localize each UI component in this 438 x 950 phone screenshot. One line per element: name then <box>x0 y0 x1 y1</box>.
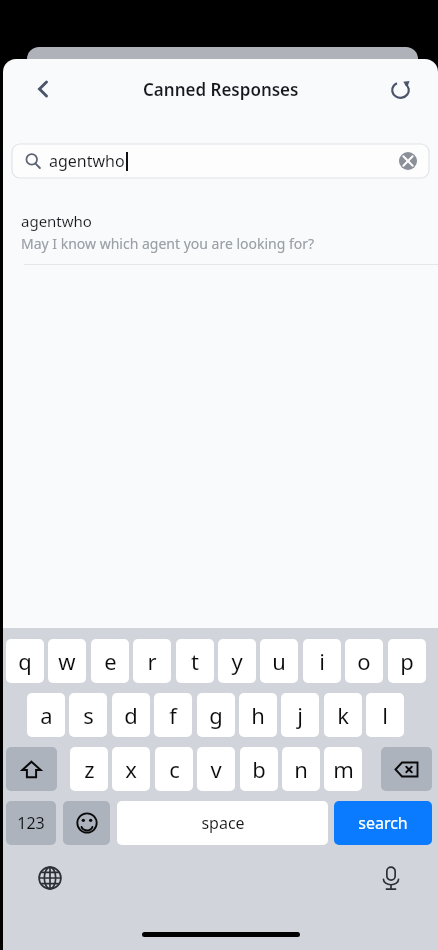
staticText: r <box>147 646 157 676</box>
staticText: b <box>252 754 266 784</box>
staticText: g <box>209 700 223 730</box>
staticText: agentwho <box>49 150 125 172</box>
button[interactable]: 123 <box>6 801 56 845</box>
staticText: q <box>18 646 32 676</box>
button[interactable]: Refresh <box>378 67 422 111</box>
button[interactable]: f <box>154 693 192 737</box>
staticText: Canned Responses <box>143 78 299 101</box>
button[interactable]: b <box>240 747 278 791</box>
button[interactable]: j <box>281 693 319 737</box>
staticText: a <box>40 700 53 730</box>
button[interactable]: h <box>239 693 277 737</box>
button[interactable]: v <box>197 747 235 791</box>
button[interactable]: Clear text <box>395 148 421 174</box>
button[interactable]: x <box>112 747 150 791</box>
staticText: search <box>358 812 408 834</box>
staticText: May I know which agent you are looking f… <box>21 234 315 253</box>
button[interactable]: space <box>117 801 328 845</box>
button[interactable]: e <box>91 639 129 683</box>
button[interactable]: l <box>366 693 404 737</box>
staticText: n <box>294 754 308 784</box>
staticText: x <box>125 754 137 784</box>
button[interactable]: r <box>133 639 171 683</box>
staticText: e <box>104 646 117 676</box>
button[interactable]: m <box>324 747 362 791</box>
staticText: p <box>400 646 414 676</box>
button[interactable]: k <box>324 693 362 737</box>
staticText: y <box>231 646 243 676</box>
button[interactable]: Voice input <box>374 861 408 895</box>
staticText: k <box>337 700 349 730</box>
button[interactable]: w <box>48 639 86 683</box>
staticText: i <box>319 646 325 676</box>
button[interactable]: g <box>197 693 235 737</box>
button[interactable]: a <box>27 693 65 737</box>
staticText: v <box>210 754 222 784</box>
staticText: t <box>191 646 199 676</box>
button[interactable]: Back <box>21 67 65 111</box>
staticText: space <box>201 812 245 834</box>
button[interactable]: p <box>388 639 426 683</box>
button[interactable]: search <box>334 801 432 845</box>
button[interactable]: Change keyboard language <box>33 861 67 895</box>
staticText: s <box>83 700 94 730</box>
button[interactable]: y <box>218 639 256 683</box>
staticText: m <box>333 754 354 784</box>
staticText: 123 <box>17 812 45 834</box>
button[interactable]: agentwho <box>3 205 438 264</box>
staticText: d <box>124 700 138 730</box>
staticText: f <box>169 700 177 730</box>
button[interactable]: Emoji <box>63 801 110 845</box>
staticText: w <box>58 646 76 676</box>
button[interactable]: c <box>155 747 193 791</box>
staticText: h <box>251 700 265 730</box>
button[interactable]: n <box>282 747 320 791</box>
staticText: agentwho <box>21 211 92 231</box>
button[interactable]: z <box>70 747 108 791</box>
staticText: o <box>357 646 371 676</box>
staticText: c <box>169 754 180 784</box>
button[interactable]: d <box>112 693 150 737</box>
button[interactable]: Backspace <box>381 747 432 791</box>
staticText: u <box>272 646 286 676</box>
staticText: l <box>382 700 388 730</box>
button[interactable]: s <box>69 693 107 737</box>
button[interactable]: i <box>303 639 341 683</box>
staticText: z <box>84 754 95 784</box>
button[interactable]: u <box>260 639 298 683</box>
button[interactable]: q <box>6 639 44 683</box>
staticText: j <box>297 700 303 730</box>
button[interactable]: o <box>345 639 383 683</box>
button[interactable]: agentwho <box>12 144 429 178</box>
button[interactable]: t <box>176 639 214 683</box>
button[interactable]: Shift <box>6 747 57 791</box>
